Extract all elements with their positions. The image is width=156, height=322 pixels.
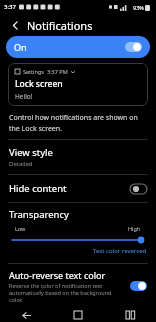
staticText: 93% [133, 4, 144, 11]
staticText: Control how notifications are shown on t… [9, 113, 147, 133]
staticText: High [128, 225, 141, 232]
button[interactable]: Auto-reverse text color [0, 264, 156, 308]
staticText: Notifications [27, 18, 93, 33]
button[interactable]: View style [0, 140, 156, 174]
staticText: Hide content [9, 182, 67, 195]
staticText: Reverse the color of notification text a… [9, 282, 126, 303]
staticText: Text color reversed [93, 247, 147, 255]
staticText: On [14, 41, 27, 53]
button[interactable]: Home [52, 308, 104, 322]
staticText: Lock screen [15, 78, 63, 90]
staticText: Detailed [9, 160, 33, 168]
button[interactable]: Back [0, 308, 52, 322]
button[interactable]: Transparency slider [9, 235, 147, 245]
staticText: View style [9, 146, 53, 159]
staticText: Auto-reverse text color [9, 269, 106, 281]
staticText: Settings [23, 68, 44, 75]
staticText: 3:37 PM [47, 68, 68, 75]
button[interactable]: Recent apps [104, 308, 156, 322]
staticText: 3:37 [4, 3, 16, 11]
staticText: Hello! [15, 92, 33, 101]
button[interactable]: On [6, 36, 150, 58]
staticText: Low [15, 225, 26, 232]
button[interactable]: Back [6, 16, 24, 34]
button[interactable]: Hide content [0, 175, 156, 202]
staticText: Transparency [9, 208, 69, 221]
